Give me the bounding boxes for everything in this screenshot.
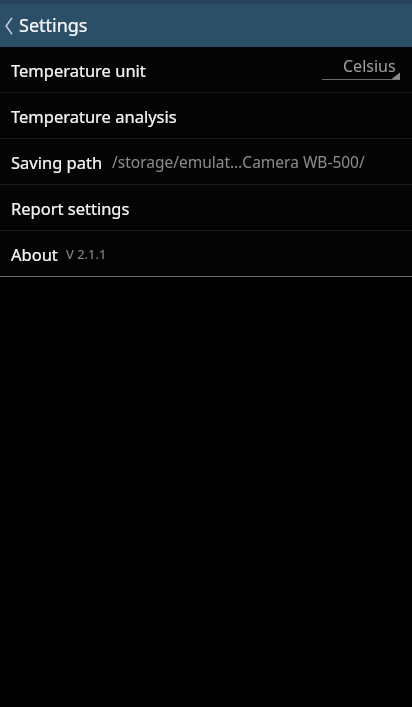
button[interactable]: Temperature unit spinner (322, 53, 400, 87)
staticText: /storage/emulat…Camera WB-500/ (112, 151, 365, 172)
button[interactable]: Temperature analysis (0, 93, 412, 138)
staticText: Saving path (11, 151, 103, 173)
staticText: About (11, 243, 58, 265)
staticText: Temperature analysis (11, 105, 177, 127)
staticText: Celsius (343, 55, 396, 77)
button[interactable]: Temperature unit (0, 47, 412, 92)
staticText: V 2.1.1 (66, 245, 107, 263)
staticText: Settings (19, 13, 88, 38)
button[interactable]: About (0, 231, 412, 276)
button[interactable]: Saving path (0, 139, 412, 184)
button[interactable]: Report settings (0, 185, 412, 230)
button[interactable]: Back to previous screen (0, 4, 412, 47)
staticText: Report settings (11, 197, 130, 219)
staticText: Temperature unit (11, 59, 146, 81)
